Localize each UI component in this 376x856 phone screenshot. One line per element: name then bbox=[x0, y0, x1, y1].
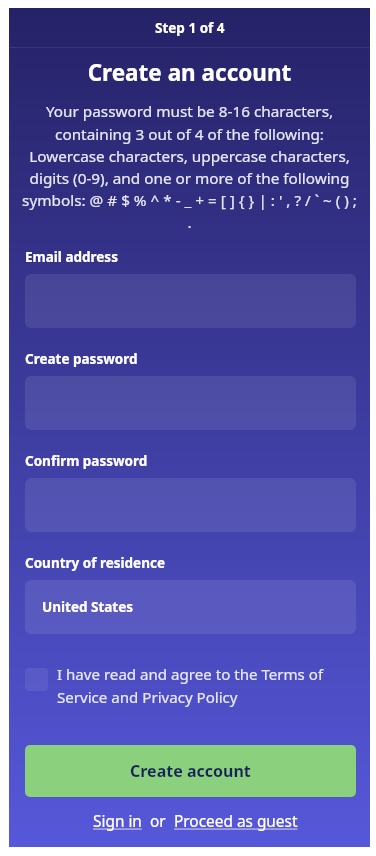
button[interactable]: Create account bbox=[25, 745, 356, 797]
staticText: or bbox=[142, 811, 174, 832]
button[interactable]: Country of residence bbox=[25, 580, 356, 634]
staticText: Create account bbox=[130, 760, 251, 782]
button[interactable]: Proceed as guest bbox=[174, 811, 298, 832]
staticText: United States bbox=[42, 598, 134, 616]
staticText: Confirm password bbox=[25, 452, 148, 470]
button[interactable]: Step 1 of 4 bbox=[9, 8, 370, 47]
staticText: I have read and agree to the Terms of Se… bbox=[57, 664, 356, 708]
staticText: Create password bbox=[25, 350, 138, 368]
staticText: Step 1 of 4 bbox=[155, 19, 225, 37]
staticText: Create an account bbox=[9, 57, 370, 88]
button[interactable]: I have read and agree to the Terms of Se… bbox=[25, 664, 356, 708]
staticText: Email address bbox=[25, 248, 118, 266]
staticText: Country of residence bbox=[25, 554, 165, 572]
staticText: Your password must be 8-16 characters, c… bbox=[9, 101, 370, 232]
button[interactable]: Sign in bbox=[93, 811, 142, 832]
